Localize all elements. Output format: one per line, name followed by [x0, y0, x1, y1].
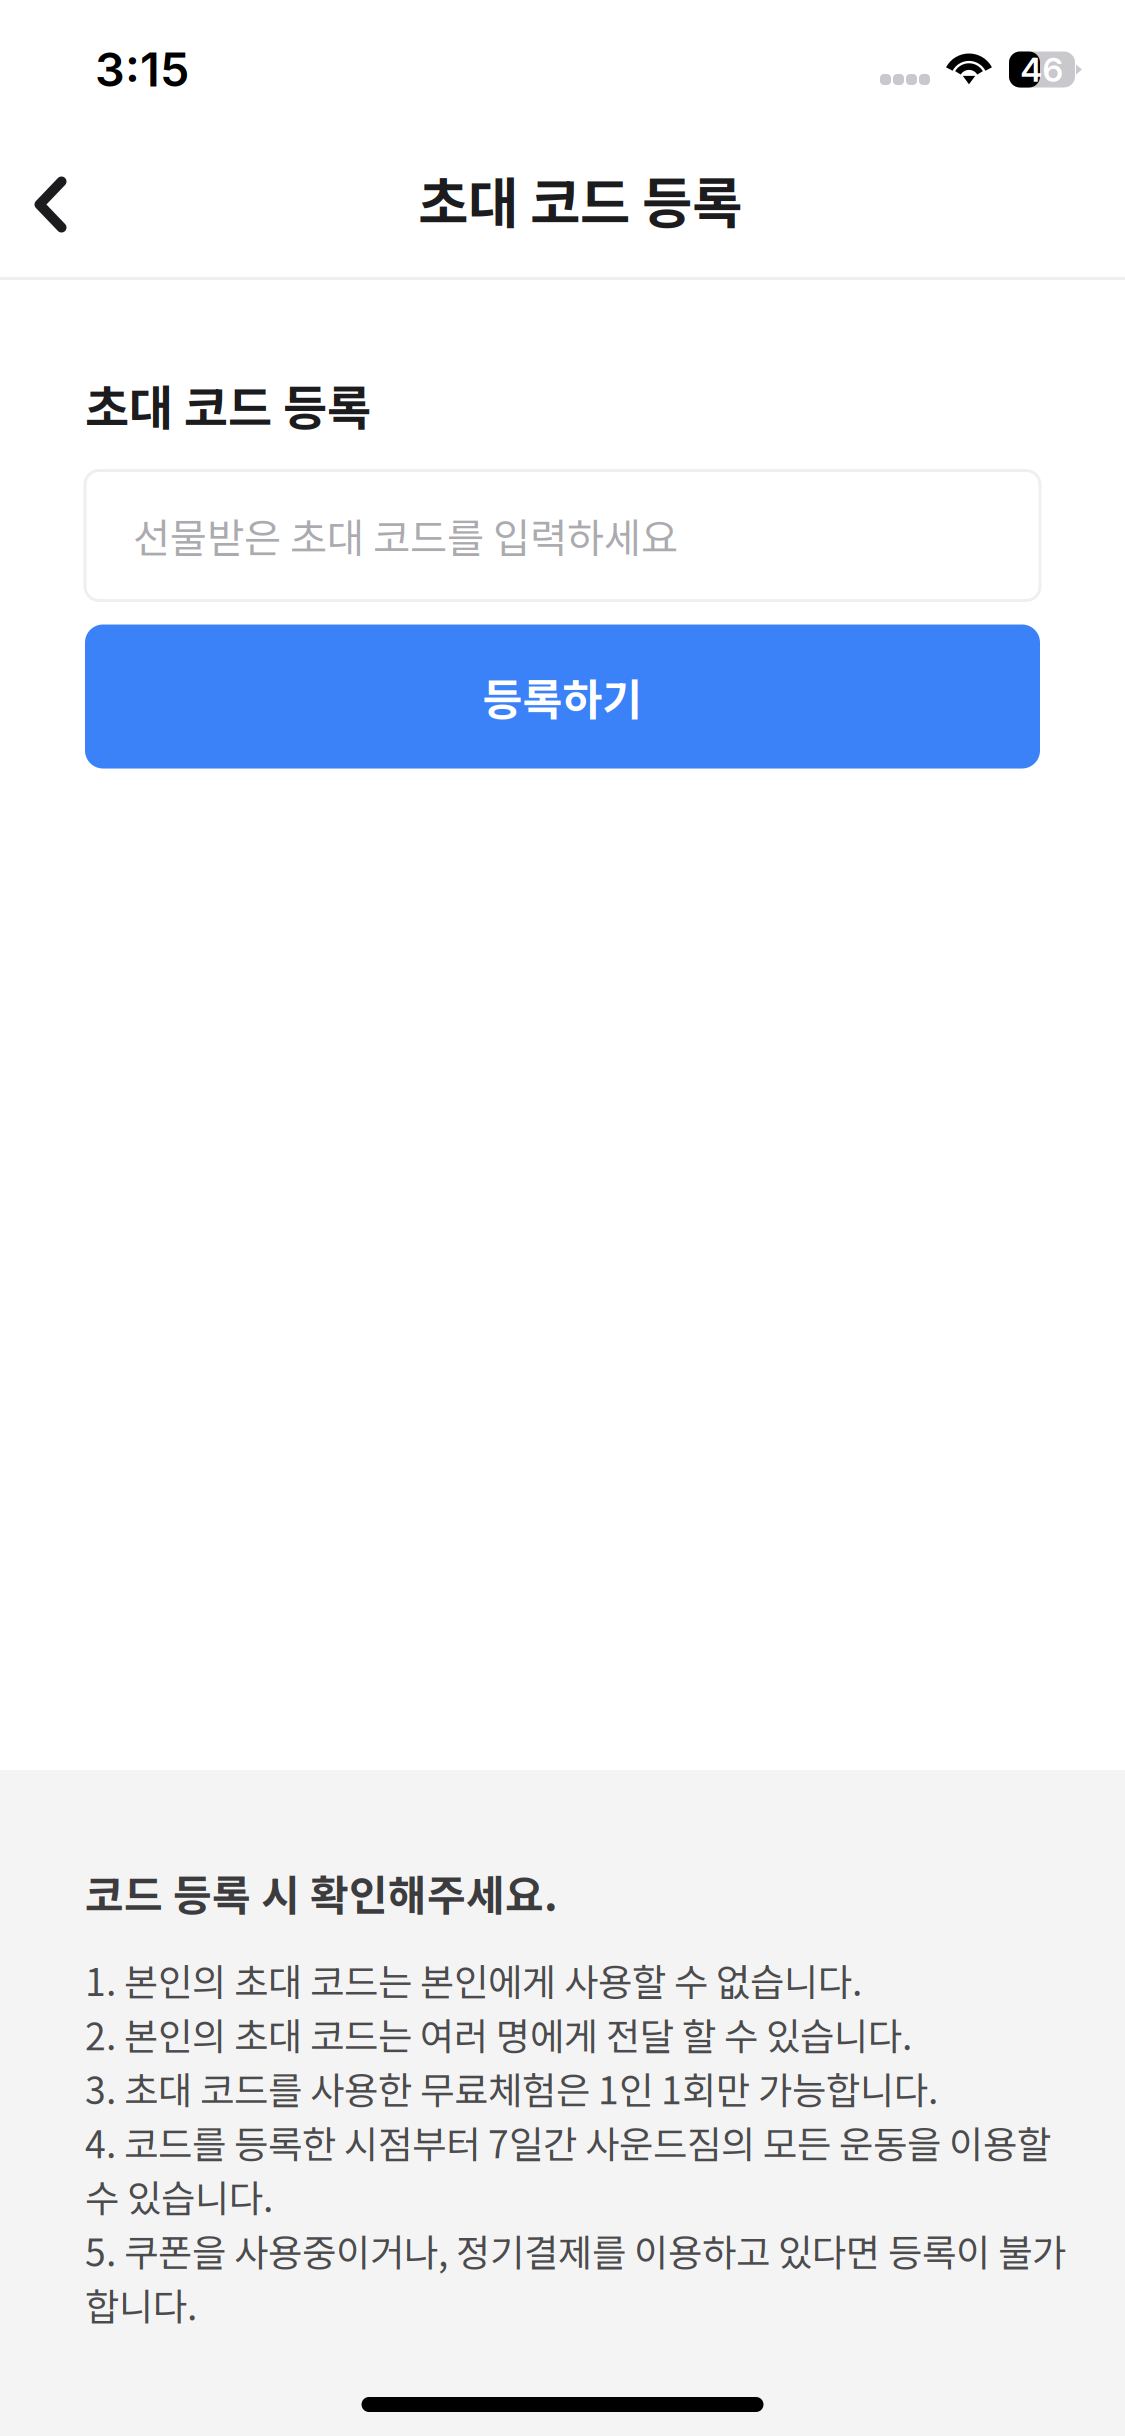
- staticText: 선물받은 초대 코드를 입력하세요: [133, 506, 678, 565]
- staticText: 초대 코드 등록: [85, 370, 371, 439]
- staticText: 46: [1020, 49, 1063, 90]
- button[interactable]: Back: [0, 152, 100, 256]
- button[interactable]: 등록하기: [85, 624, 1040, 768]
- staticText: 초대 코드 등록: [418, 160, 742, 239]
- staticText: 3:15: [95, 41, 189, 98]
- staticText: 코드 등록 시 확인해주세요.: [85, 1862, 558, 1923]
- staticText: 등록하기: [482, 665, 642, 728]
- staticText: 1. 본인의 초대 코드는 본인에게 사용할 수 없습니다. 2. 본인의 초대…: [85, 1953, 1066, 2331]
- button[interactable]: 선물받은 초대 코드를 입력하세요: [85, 470, 1040, 600]
